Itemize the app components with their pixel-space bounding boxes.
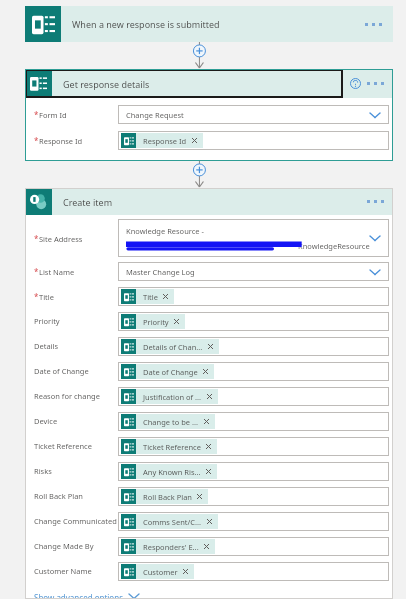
staticText: Justification of ... xyxy=(143,392,202,402)
staticText: Reason for change xyxy=(34,391,100,401)
other: Remove Details of Chan... xyxy=(208,344,213,349)
staticText: Create item xyxy=(63,196,113,208)
button[interactable]: Customer xyxy=(118,562,389,581)
button[interactable]: More commands xyxy=(367,82,384,85)
button[interactable]: Title xyxy=(118,287,389,306)
button[interactable]: Roll Back Plan xyxy=(118,487,389,506)
button[interactable]: More commands xyxy=(365,23,382,26)
button[interactable]: Justification of ... xyxy=(118,387,389,406)
staticText: Details xyxy=(34,341,59,351)
staticText: Site Address xyxy=(39,234,83,244)
staticText: * xyxy=(34,135,39,146)
staticText: Roll Back Plan xyxy=(34,491,83,501)
other: Remove Ticket Reference xyxy=(206,444,211,449)
button[interactable]: More commands xyxy=(367,200,384,203)
button[interactable]: Help xyxy=(343,69,367,98)
button[interactable]: Details of Chan... xyxy=(118,337,389,356)
other: Remove Response Id xyxy=(192,138,197,143)
staticText: Change Made By xyxy=(34,541,94,551)
button[interactable]: Create item xyxy=(25,188,393,215)
button[interactable]: Change Request xyxy=(118,105,389,124)
staticText: Change Request xyxy=(126,110,184,120)
staticText: * xyxy=(34,233,39,244)
staticText: Title xyxy=(143,292,158,302)
button[interactable]: Any Known Ris... xyxy=(118,462,389,481)
staticText: Any Known Ris... xyxy=(143,467,201,477)
staticText: Show advanced options xyxy=(34,592,123,599)
other: Remove Date of Change xyxy=(203,369,208,374)
staticText: Get response details xyxy=(63,78,150,90)
staticText: List Name xyxy=(39,267,75,277)
other: Remove Roll Back Plan xyxy=(197,494,202,499)
button[interactable]: Responders' E... xyxy=(118,537,389,556)
button[interactable]: Show advanced options xyxy=(34,592,139,599)
staticText: Master Change Log xyxy=(126,267,195,277)
other: Remove Responders' E... xyxy=(204,544,209,549)
other: Remove Priority xyxy=(174,319,179,324)
button[interactable]: Insert a new step xyxy=(202,42,217,57)
button[interactable]: When a new response is submitted xyxy=(25,6,393,42)
other: Remove Justification of ... xyxy=(207,394,212,399)
staticText: * xyxy=(34,109,39,120)
staticText: Device xyxy=(34,416,58,426)
staticText: Date of Change xyxy=(143,367,198,377)
button[interactable]: Comms Sent/C... xyxy=(118,512,389,531)
staticText: Comms Sent/C... xyxy=(143,517,202,527)
button[interactable]: Priority xyxy=(118,312,389,331)
button[interactable]: Change to be ... xyxy=(118,412,389,431)
other: Remove Any Known Ris... xyxy=(206,469,211,474)
button[interactable]: Get response details xyxy=(25,69,343,98)
staticText: Date of Change xyxy=(34,366,89,376)
button[interactable]: Response Id xyxy=(118,131,389,150)
button[interactable]: Date of Change xyxy=(118,362,389,381)
staticText: Roll Back Plan xyxy=(143,492,192,502)
staticText: Priority xyxy=(143,317,169,327)
staticText: Title xyxy=(39,292,54,302)
button[interactable]: Master Change Log xyxy=(118,262,389,281)
other: Remove Customer xyxy=(183,569,188,574)
staticText: Risks xyxy=(34,466,52,476)
staticText: Form Id xyxy=(39,110,67,120)
staticText: Customer Name xyxy=(34,566,92,576)
staticText: Response Id xyxy=(39,136,83,146)
button[interactable]: Ticket Reference xyxy=(118,437,389,456)
other: Remove Change to be ... xyxy=(204,419,209,424)
staticText: Priority xyxy=(34,316,60,326)
staticText: Responders' E... xyxy=(143,542,199,552)
staticText: Customer xyxy=(143,567,178,577)
staticText: Change to be ... xyxy=(143,417,199,427)
staticText: Knowledge Resource - xyxy=(126,226,204,236)
staticText: Details of Chan... xyxy=(143,342,203,352)
staticText: Ticket Reference xyxy=(34,441,92,451)
other: Remove Title xyxy=(163,294,168,299)
staticText: KnowledgeResource xyxy=(298,241,370,251)
staticText: * xyxy=(34,291,39,302)
staticText: Ticket Reference xyxy=(143,442,201,452)
staticText: When a new response is submitted xyxy=(72,18,220,30)
staticText: * xyxy=(34,266,39,277)
staticText: Response Id xyxy=(143,136,187,146)
button[interactable]: Knowledge Resource - xyxy=(118,219,389,257)
button[interactable]: Insert a new step xyxy=(202,161,217,176)
staticText: Change Communicated xyxy=(34,516,117,526)
other: Remove Comms Sent/C... xyxy=(207,519,212,524)
